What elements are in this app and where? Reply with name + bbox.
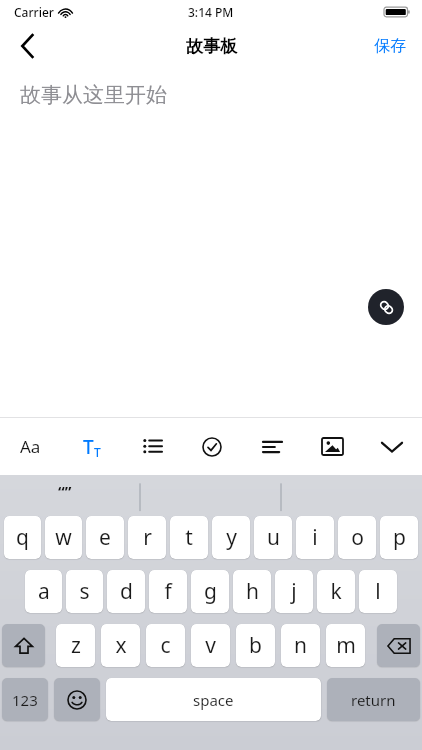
staticText: k <box>330 577 342 606</box>
button[interactable]: Hide keyboard <box>362 418 422 475</box>
button[interactable]: d <box>107 570 145 613</box>
button[interactable]: Checklist <box>182 418 242 475</box>
button[interactable]: g <box>191 570 229 613</box>
button[interactable]: z <box>56 624 95 667</box>
staticText: q <box>16 523 29 552</box>
button[interactable]: Insert image <box>302 418 362 475</box>
staticText: e <box>99 523 111 552</box>
staticText: s <box>79 577 90 606</box>
button[interactable]: Insert link <box>368 289 404 325</box>
button[interactable]: h <box>233 570 271 613</box>
staticText: “” <box>58 481 72 501</box>
button[interactable]: Font size <box>0 418 61 475</box>
staticText: 故事从这里开始 <box>20 82 167 108</box>
staticText: r <box>143 523 152 552</box>
staticText: a <box>38 577 50 606</box>
staticText: 3:14 PM <box>188 4 234 20</box>
staticText: m <box>336 631 356 660</box>
button[interactable]: m <box>326 624 365 667</box>
button[interactable]: y <box>212 516 250 559</box>
staticText: T <box>94 444 101 460</box>
button[interactable]: Backspace <box>377 624 420 667</box>
button[interactable]: Return <box>327 678 420 721</box>
staticText: space <box>193 690 234 710</box>
button[interactable]: Bulleted list <box>122 418 182 475</box>
staticText: 故事板 <box>186 36 237 57</box>
button[interactable]: Emoji <box>54 678 100 721</box>
button[interactable]: e <box>86 516 124 559</box>
staticText: f <box>164 577 172 606</box>
staticText: y <box>226 523 237 552</box>
button[interactable]: p <box>380 516 418 559</box>
staticText: i <box>312 523 318 552</box>
staticText: w <box>55 523 72 552</box>
staticText: j <box>291 577 297 606</box>
staticText: Aa <box>20 435 41 458</box>
staticText: o <box>351 523 364 552</box>
button[interactable]: v <box>191 624 230 667</box>
button[interactable]: c <box>146 624 185 667</box>
staticText: v <box>205 631 216 660</box>
button[interactable]: l <box>359 570 397 613</box>
staticText: t <box>185 523 193 552</box>
button[interactable]: o <box>338 516 376 559</box>
button[interactable]: s <box>66 570 103 613</box>
button[interactable]: i <box>296 516 334 559</box>
button[interactable]: k <box>317 570 355 613</box>
staticText: n <box>294 631 307 660</box>
button[interactable]: Back <box>0 24 54 68</box>
button[interactable]: Alignment <box>242 418 302 475</box>
button[interactable]: 保存 <box>358 24 422 68</box>
staticText: g <box>204 577 217 606</box>
staticText: T <box>83 434 94 460</box>
staticText: z <box>71 631 81 660</box>
button[interactable]: Numbers <box>2 678 48 721</box>
button[interactable]: r <box>128 516 166 559</box>
staticText: c <box>160 631 171 660</box>
button[interactable]: Shift <box>2 624 45 667</box>
staticText: b <box>249 631 262 660</box>
button[interactable]: x <box>101 624 140 667</box>
button[interactable]: b <box>236 624 275 667</box>
button[interactable]: t <box>170 516 208 559</box>
button[interactable]: n <box>281 624 320 667</box>
staticText: h <box>246 577 259 606</box>
staticText: Carrier <box>14 4 54 20</box>
button[interactable]: space <box>106 678 321 721</box>
staticText: u <box>267 523 280 552</box>
button[interactable]: q <box>4 516 41 559</box>
staticText: l <box>375 577 381 606</box>
staticText: x <box>115 631 127 660</box>
button[interactable]: a <box>25 570 62 613</box>
staticText: p <box>393 523 406 552</box>
button[interactable]: j <box>275 570 313 613</box>
staticText: 保存 <box>374 36 406 56</box>
staticText: 123 <box>12 690 38 710</box>
button[interactable]: f <box>149 570 187 613</box>
button[interactable]: w <box>45 516 82 559</box>
staticText: d <box>120 577 133 606</box>
button[interactable]: u <box>254 516 292 559</box>
staticText: return <box>351 690 396 710</box>
button[interactable]: Text style <box>61 418 122 475</box>
